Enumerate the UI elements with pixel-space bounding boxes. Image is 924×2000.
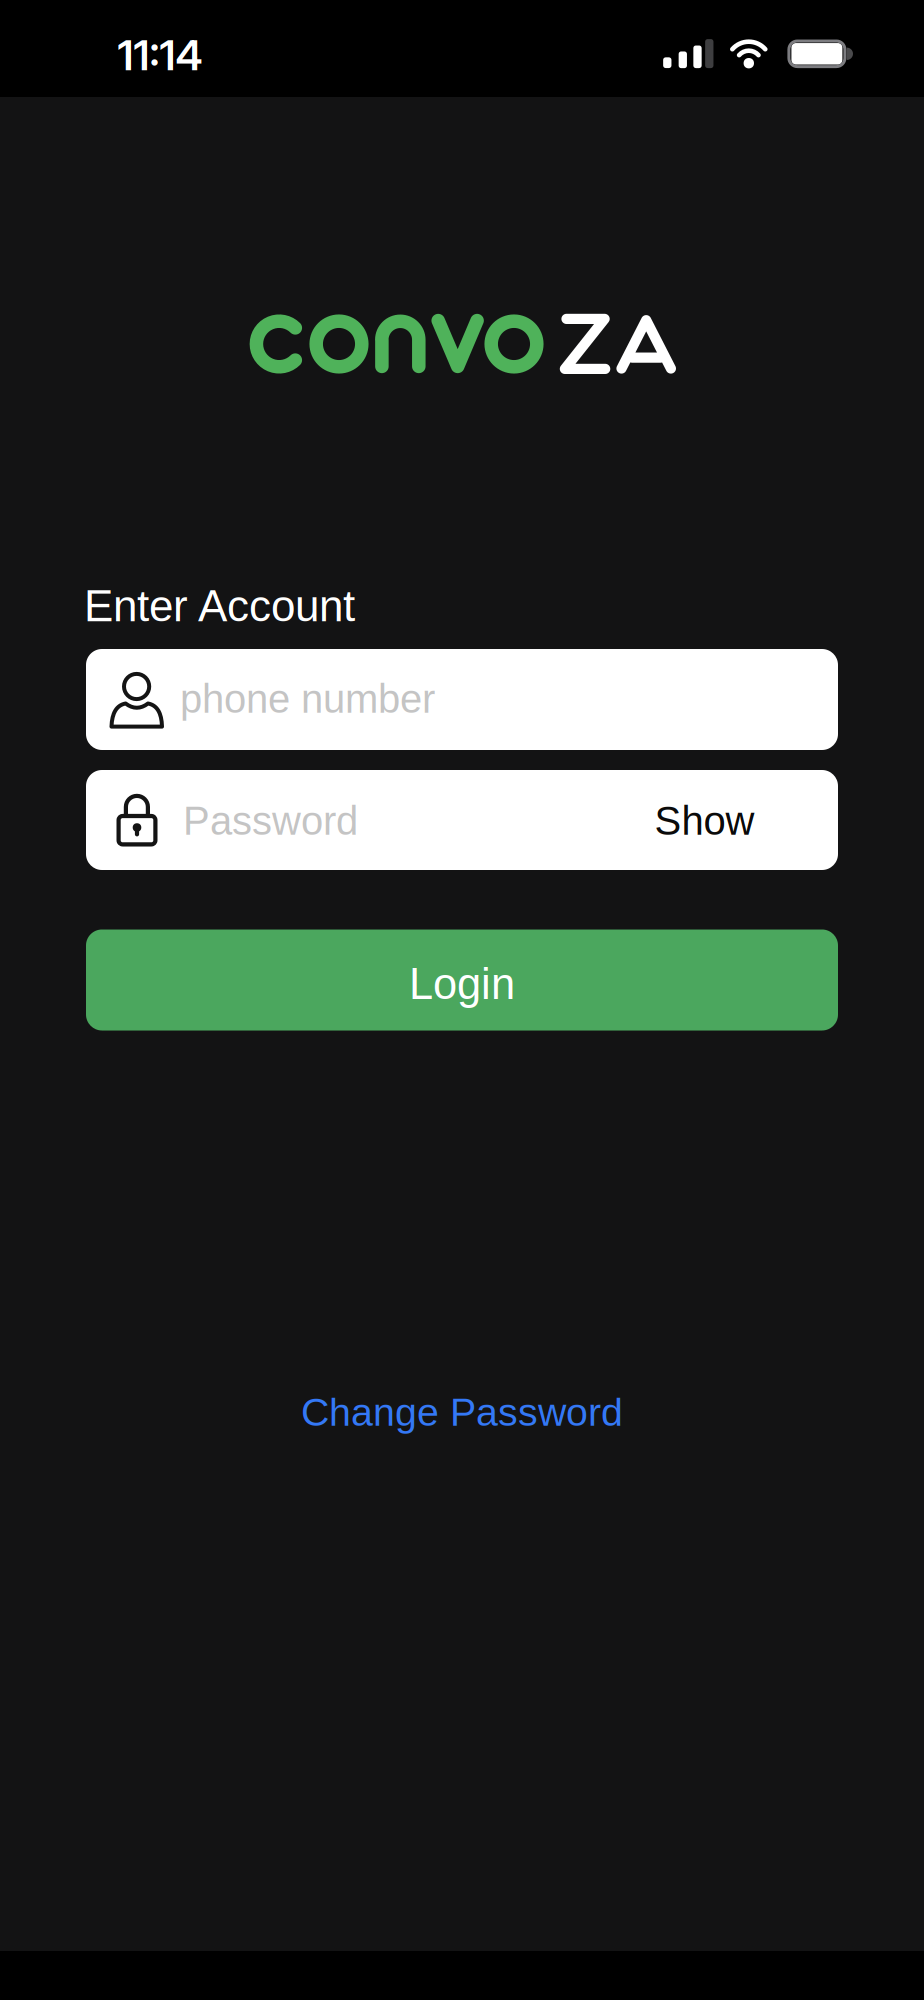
staticText: 11:14 bbox=[117, 30, 202, 80]
staticText: Change Password bbox=[301, 1390, 623, 1434]
staticText: Password bbox=[183, 799, 358, 843]
staticText: Enter Account bbox=[84, 581, 355, 631]
button[interactable]: Show bbox=[654, 799, 754, 843]
button[interactable]: Login bbox=[86, 929, 838, 1030]
staticText: Show bbox=[654, 799, 754, 843]
button[interactable]: Change Password bbox=[301, 1390, 623, 1434]
staticText: Login bbox=[409, 960, 515, 1008]
staticText: phone number bbox=[180, 677, 435, 721]
